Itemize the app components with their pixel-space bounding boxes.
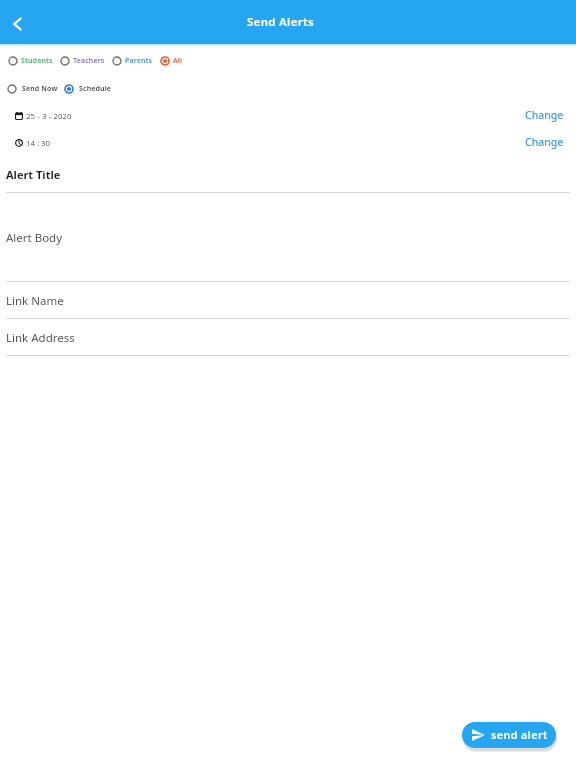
staticText: Alert Title <box>6 167 61 182</box>
button[interactable]: Link Address <box>0 322 576 356</box>
button[interactable]: Alert Body <box>0 196 576 282</box>
button[interactable]: Change <box>512 107 564 123</box>
button[interactable]: Link Name <box>0 285 576 319</box>
staticText: Teachers <box>73 56 105 66</box>
staticText: Change <box>525 108 564 122</box>
staticText: 14 : 30 <box>26 138 50 149</box>
staticText: 25 - 3 - 2020 <box>26 111 72 122</box>
staticText: Send Alerts <box>247 14 314 30</box>
button[interactable]: All <box>160 56 183 66</box>
staticText: send alert <box>491 728 548 742</box>
staticText: All <box>173 56 183 66</box>
button[interactable]: Students <box>8 56 53 66</box>
button[interactable]: Alert Title <box>0 160 576 193</box>
button[interactable]: Parents <box>112 56 153 66</box>
staticText: Parents <box>125 56 153 66</box>
staticText: Schedule <box>79 84 112 94</box>
staticText: Link Address <box>6 330 75 346</box>
button[interactable]: Teachers <box>60 56 105 66</box>
staticText: Students <box>21 56 53 66</box>
staticText: Change <box>525 135 564 149</box>
staticText: Alert Body <box>6 230 63 246</box>
button[interactable]: Send Now <box>7 84 58 94</box>
button[interactable]: Schedule <box>64 84 112 94</box>
button[interactable]: send alert <box>462 722 556 748</box>
staticText: Link Name <box>6 293 64 309</box>
button[interactable]: Change <box>512 134 564 150</box>
staticText: Send Now <box>22 84 58 94</box>
button[interactable]: Back <box>2 9 32 39</box>
